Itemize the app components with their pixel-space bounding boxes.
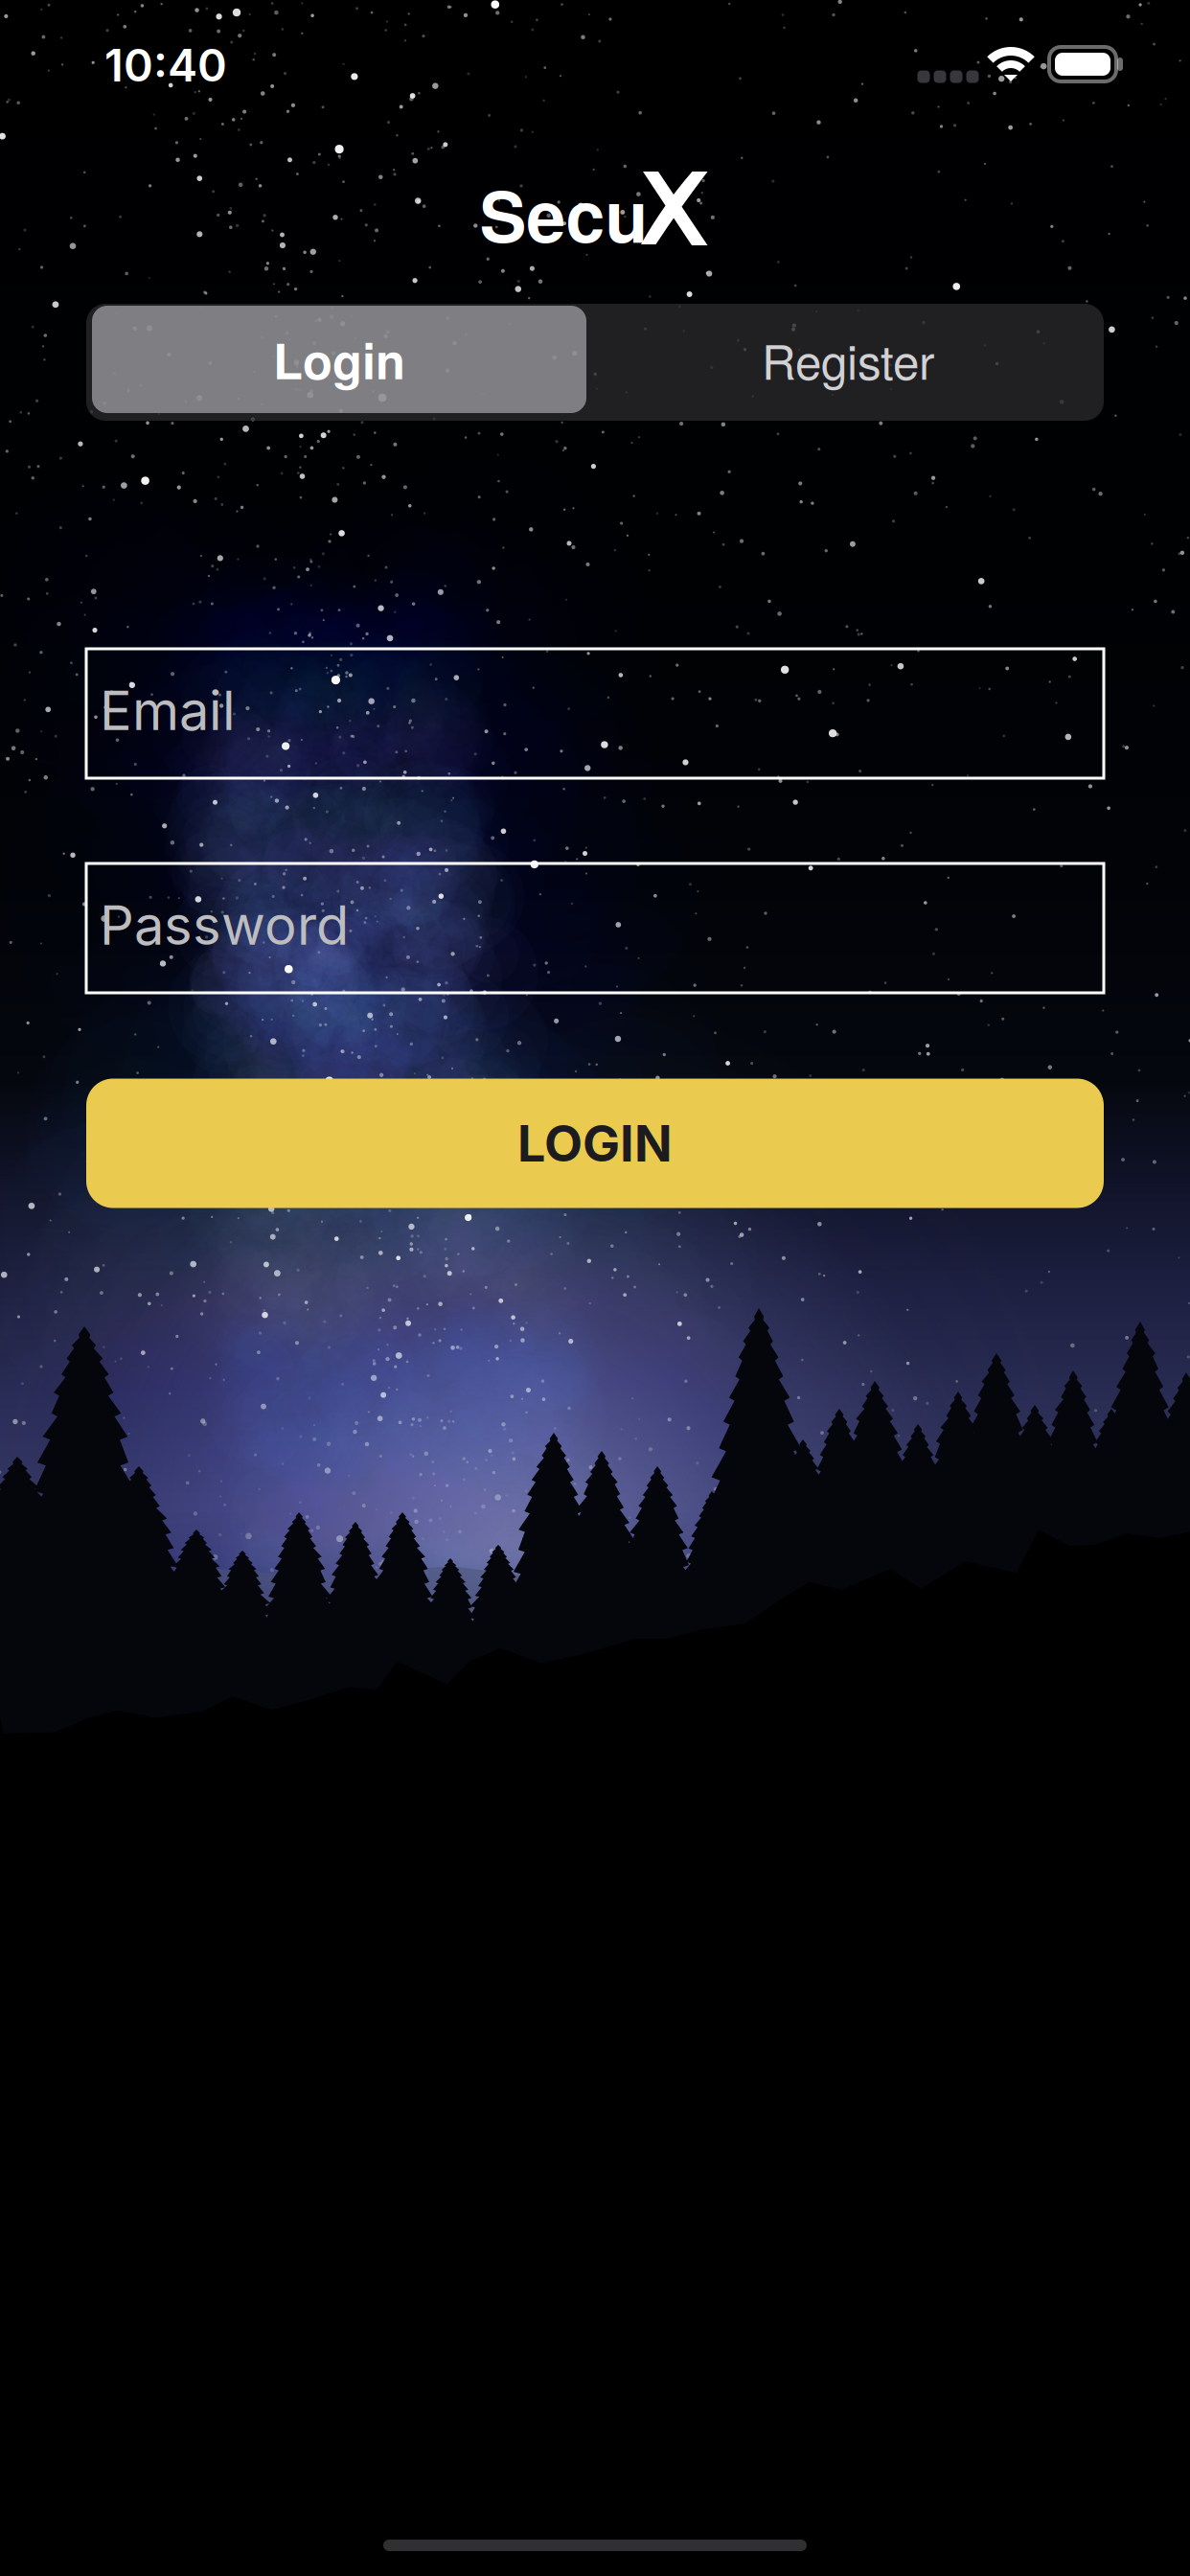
button[interactable]: Register [599, 304, 1097, 415]
staticText: Password [100, 893, 349, 958]
staticText: Email [100, 678, 236, 743]
button[interactable]: Password [86, 863, 1104, 993]
button[interactable]: Email [86, 649, 1104, 778]
button[interactable]: Login [90, 304, 588, 415]
staticText: Secu [480, 163, 648, 264]
staticText: LOGIN [517, 1113, 673, 1173]
button[interactable]: LOGIN [86, 1079, 1104, 1208]
staticText: Register [762, 326, 934, 393]
staticText: Login [273, 325, 405, 394]
staticText: 10:40 [104, 38, 227, 92]
